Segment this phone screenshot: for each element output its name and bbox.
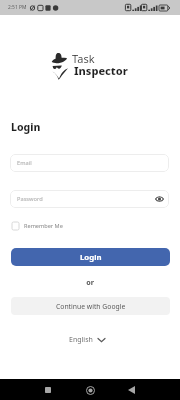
staticText: Task — [72, 51, 95, 66]
button[interactable]: English — [67, 333, 107, 347]
button[interactable]: Home — [80, 380, 100, 400]
button[interactable]: Remember Me — [12, 222, 63, 230]
staticText: Continue with Google — [56, 302, 126, 311]
button[interactable]: Password — [10, 190, 169, 208]
button[interactable]: Email — [10, 154, 169, 172]
button[interactable]: Continue with Google — [11, 297, 170, 315]
staticText: Email — [17, 159, 32, 167]
button[interactable]: Login — [11, 248, 170, 266]
staticText: Login — [80, 252, 102, 263]
staticText: Login — [11, 120, 41, 134]
staticText: 2:51 PM — [8, 4, 27, 11]
staticText: English — [69, 335, 93, 345]
button[interactable]: Recent apps — [38, 380, 58, 400]
staticText: or — [86, 277, 94, 287]
staticText: Remember Me — [24, 222, 63, 230]
staticText: Inspector — [74, 63, 128, 78]
button[interactable]: Back — [121, 380, 141, 400]
button[interactable]: Show password — [153, 193, 165, 205]
staticText: Password — [17, 195, 43, 203]
